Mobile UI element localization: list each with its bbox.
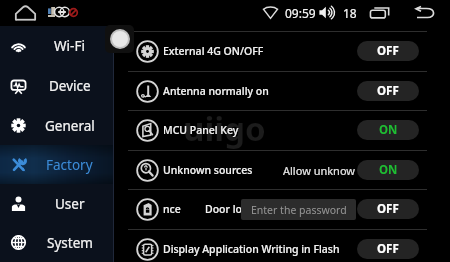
staticText: 09:59 <box>285 5 316 21</box>
staticText: OFF <box>377 241 399 257</box>
staticText: ON <box>379 122 398 138</box>
staticText: Antenna normally on <box>163 84 269 98</box>
button[interactable]: MCU Panel Key <box>136 110 419 150</box>
button[interactable]: nce <box>136 189 419 229</box>
staticText: Display Application Writing in Flash <box>163 242 340 256</box>
staticText: Allow unknow <box>283 163 355 178</box>
button[interactable]: OFF <box>357 81 419 101</box>
staticText: Enter the password <box>251 203 347 217</box>
staticText: Factory <box>46 156 93 174</box>
staticText: External 4G ON/OFF <box>163 44 264 58</box>
staticText: MCU Panel Key <box>163 123 239 137</box>
other: Volume <box>319 6 337 19</box>
staticText: OFF <box>377 201 399 217</box>
button[interactable]: Enter the password <box>241 199 356 220</box>
button[interactable]: Antenna normally on <box>136 71 419 111</box>
button[interactable]: User <box>0 184 113 223</box>
staticText: Door lock <box>205 202 253 216</box>
button[interactable]: Back <box>412 6 437 20</box>
button[interactable]: Display Application Writing in Flash <box>136 229 419 262</box>
staticText: Unknown sources <box>163 163 253 177</box>
button[interactable]: Wi-Fi <box>0 26 113 66</box>
staticText: nce <box>163 202 181 216</box>
staticText: OFF <box>377 43 399 59</box>
staticText: ON <box>379 162 398 178</box>
button[interactable]: OFF <box>357 41 419 61</box>
staticText: Device <box>49 77 91 95</box>
button[interactable]: Recent apps <box>369 6 393 20</box>
other: Touch point <box>112 31 128 47</box>
button[interactable]: ON <box>357 120 419 140</box>
button[interactable]: System <box>0 223 113 262</box>
button[interactable]: OFF <box>357 199 419 219</box>
staticText: System <box>47 234 93 252</box>
staticText: User <box>55 195 85 213</box>
button[interactable]: OFF <box>357 239 419 259</box>
staticText: General <box>45 117 95 135</box>
button[interactable]: General <box>0 106 113 145</box>
button[interactable]: Home <box>15 5 36 21</box>
staticText: Wi-Fi <box>54 37 85 55</box>
button[interactable]: External 4G ON/OFF <box>136 31 419 71</box>
button[interactable]: ON <box>357 160 419 180</box>
button[interactable]: Factory <box>0 145 113 184</box>
button[interactable]: Device <box>0 66 113 106</box>
staticText: OFF <box>377 83 399 99</box>
staticText: 18 <box>343 5 357 21</box>
button[interactable]: Unknown sources <box>136 150 419 190</box>
staticText: uiigo <box>183 106 266 151</box>
other: Wi-Fi signal <box>263 6 278 19</box>
